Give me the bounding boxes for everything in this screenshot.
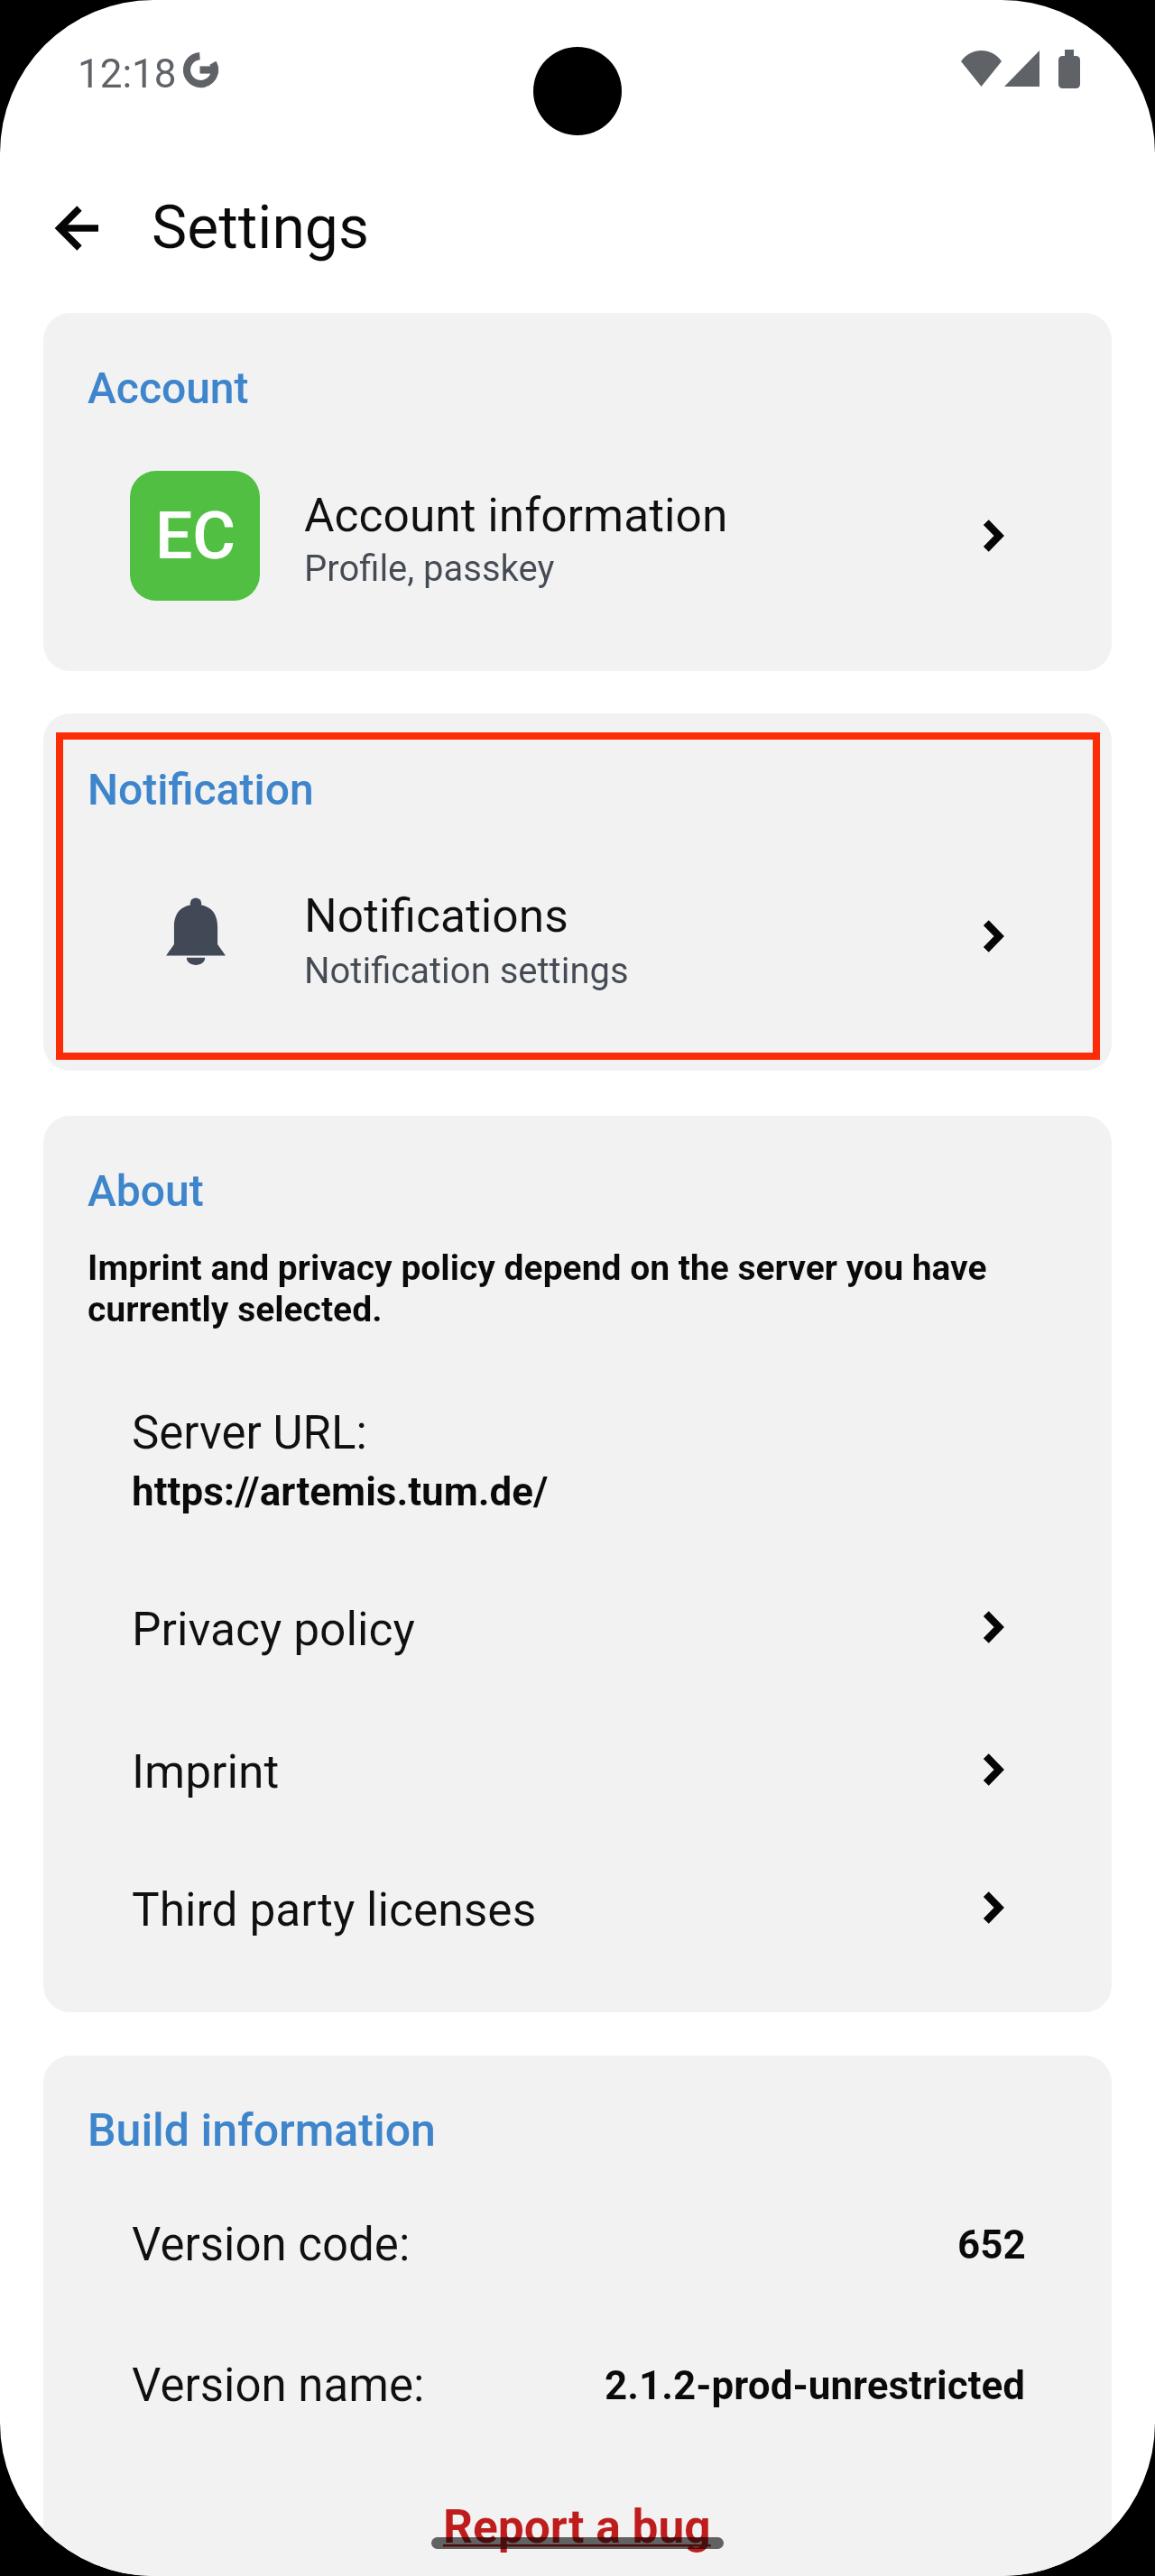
staticText: About [88, 1165, 204, 1216]
staticText: Report a bug [443, 2499, 711, 2553]
staticText: Build information [88, 2104, 436, 2157]
button[interactable]: Notifications [43, 847, 1112, 1026]
button[interactable]: Imprint [43, 1716, 1112, 1816]
staticText: Settings [152, 193, 369, 262]
button[interactable]: Back [37, 185, 124, 271]
button[interactable]: Third party licenses [43, 1854, 1112, 1954]
staticText: Notification [88, 764, 314, 814]
button[interactable]: Report a bug [421, 2494, 732, 2559]
staticText: Third party licenses [132, 1882, 537, 1937]
staticText: Account information [304, 488, 728, 542]
staticText: Notifications [304, 888, 568, 943]
staticText: 12:18 [78, 51, 177, 97]
staticText: Privacy policy [132, 1602, 415, 1656]
button[interactable]: Privacy policy [43, 1574, 1112, 1673]
staticText: Account [88, 363, 249, 413]
staticText: Profile, passkey [304, 547, 555, 590]
staticText: Version name: [132, 2359, 425, 2413]
staticText: Notification settings [304, 950, 629, 992]
staticText: Server URL: [132, 1406, 367, 1460]
staticText: 2.1.2-prod-unrestricted [605, 2362, 1026, 2409]
button[interactable]: EC [43, 446, 1112, 625]
staticText: EC [155, 497, 236, 575]
staticText: https://artemis.tum.de/ [132, 1468, 549, 1515]
staticText: Imprint [132, 1744, 280, 1799]
staticText: Version code: [132, 2218, 411, 2272]
staticText: Imprint and privacy policy depend on the… [88, 1247, 1089, 1329]
staticText: 652 [957, 2222, 1026, 2268]
